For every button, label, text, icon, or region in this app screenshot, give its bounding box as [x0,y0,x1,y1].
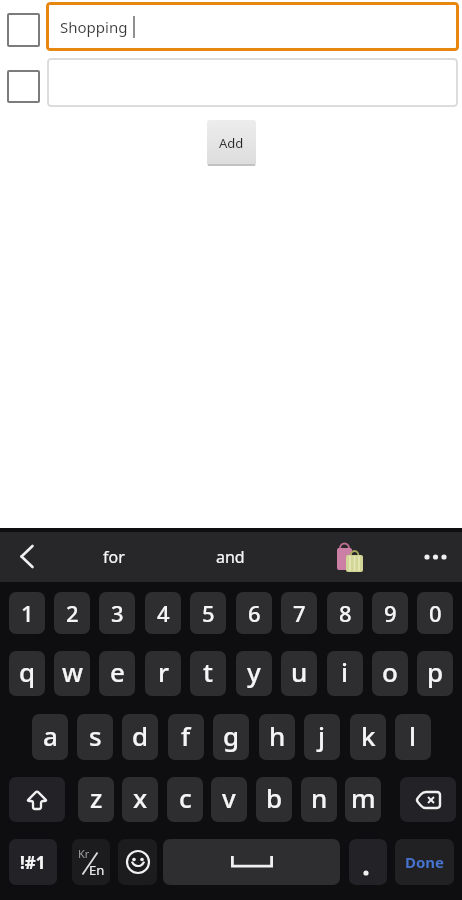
staticText: Done [405,852,445,872]
staticText: z [90,780,103,815]
staticText: 7 [293,598,306,628]
button[interactable]: c [167,777,203,822]
staticText: a [43,718,58,753]
staticText: j [318,718,326,753]
staticText: 4 [157,598,170,628]
button[interactable]: 6 [236,592,272,634]
button[interactable]: n [301,777,337,822]
staticText: t [203,654,213,689]
staticText: r [158,654,169,689]
staticText: 5 [202,598,215,628]
staticText: w [62,654,83,689]
button[interactable]: 4 [145,592,181,634]
button[interactable]: b [256,777,292,822]
button[interactable]: Add [207,120,256,166]
button[interactable]: 3 [99,592,135,634]
staticText: Add [219,134,244,152]
staticText: e [110,654,125,689]
staticText: o [382,654,398,689]
button[interactable]: z [78,777,114,822]
button[interactable]: d [122,714,158,760]
staticText: k [361,718,376,753]
staticText: s [89,718,102,753]
button[interactable]: 9 [372,592,408,634]
button[interactable]: w [54,651,90,696]
staticText: Kr [78,846,90,861]
button[interactable]: u [281,651,317,696]
staticText: q [19,654,36,689]
button[interactable]: x [122,777,158,822]
staticText: m [351,780,376,815]
staticText: Shopping [60,17,128,37]
button[interactable]: f [168,714,204,760]
button[interactable] [349,839,387,885]
staticText: 1 [21,598,34,628]
button[interactable]: and [201,533,259,581]
staticText: y [247,654,261,689]
button[interactable]: m [345,777,381,822]
button[interactable]: for [85,533,143,581]
button[interactable]: 1 [9,592,45,634]
button[interactable] [9,777,65,822]
button[interactable]: 2 [54,592,90,634]
button[interactable]: Kr [72,839,110,885]
button[interactable]: p [417,651,453,696]
button[interactable]: 7 [281,592,317,634]
staticText: h [269,718,286,753]
staticText: x [133,780,148,815]
staticText: 6 [248,598,261,628]
staticText: p [427,654,444,689]
button[interactable]: t [190,651,226,696]
button[interactable]: s [77,714,113,760]
staticText: b [266,780,283,815]
button[interactable] [47,58,458,107]
button[interactable]: o [372,651,408,696]
staticText: 2 [66,598,79,628]
button[interactable]: y [236,651,272,696]
button[interactable]: 5 [190,592,226,634]
staticText: n [311,780,328,815]
staticText: 8 [339,598,352,628]
button[interactable]: q [9,651,45,696]
staticText: l [409,718,417,753]
button[interactable]: i [327,651,363,696]
button[interactable]: k [350,714,386,760]
button[interactable]: j [304,714,340,760]
staticText: c [179,780,192,815]
button[interactable]: a [32,714,68,760]
staticText: for [103,546,125,568]
staticText: !#1 [20,851,46,874]
staticText: 0 [429,598,442,628]
button[interactable] [7,70,40,103]
button[interactable] [400,777,456,822]
button[interactable]: r [145,651,181,696]
button[interactable]: g [213,714,249,760]
button[interactable] [118,839,157,885]
staticText: i [341,654,349,689]
button[interactable]: l [395,714,431,760]
staticText: u [291,654,308,689]
staticText: En [89,861,105,879]
button[interactable]: Shopping [46,2,459,51]
button[interactable] [163,839,340,885]
button[interactable]: e [99,651,135,696]
button[interactable]: 8 [327,592,363,634]
staticText: d [132,718,149,753]
staticText: f [181,718,191,753]
staticText: 9 [384,598,397,628]
button[interactable] [7,13,40,47]
staticText: g [223,718,240,753]
button[interactable]: Done [395,839,454,885]
staticText: v [222,780,236,815]
button[interactable]: !#1 [9,839,57,885]
staticText: 3 [111,598,124,628]
button[interactable]: v [211,777,247,822]
staticText: and [216,546,245,568]
button[interactable]: h [259,714,295,760]
button[interactable]: 0 [417,592,453,634]
